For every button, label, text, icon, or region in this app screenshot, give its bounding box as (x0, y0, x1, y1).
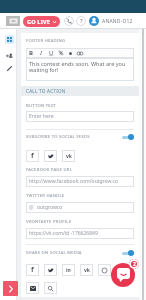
staticText: TWITTER HANDLE (26, 193, 65, 199)
button[interactable]: MAIL (26, 282, 39, 294)
button[interactable]: LINKEDIN (62, 264, 75, 276)
staticText: GO LIVE (27, 18, 51, 25)
button[interactable]: SUBSCRIBE TO SOCIAL FEEDS (26, 132, 134, 141)
button[interactable]: Audience (4, 50, 15, 61)
button[interactable]: VK (62, 150, 75, 162)
button[interactable]: This contest ends soon. What are you wai… (26, 58, 134, 81)
staticText: SHARE ON SOCIAL MEDIA (26, 250, 82, 256)
staticText: @ (29, 204, 34, 211)
button[interactable]: http://www.facebook.com/outgrow.co (26, 176, 134, 187)
staticText: FOOTER HEADING (26, 38, 66, 44)
staticText: B (29, 49, 33, 57)
button[interactable]: I (36, 48, 46, 58)
staticText: CALL TO ACTION (26, 88, 66, 94)
button[interactable]: Call support (64, 16, 74, 26)
staticText: ? (80, 17, 83, 25)
button[interactable]: LINK (44, 282, 57, 294)
staticText: outgrowco (37, 204, 63, 211)
button[interactable]: TWITTER (44, 150, 57, 162)
staticText: This contest ends soon. What are you wai… (29, 60, 131, 74)
button[interactable]: Help (76, 16, 86, 26)
button[interactable]: Logo (6, 16, 20, 26)
button[interactable]: VK (80, 264, 93, 276)
staticText: in (66, 267, 71, 274)
staticText: VKONTAKTE PROFILE (26, 219, 72, 225)
button[interactable]: Emoji (66, 48, 75, 58)
button[interactable]: PIN (98, 264, 111, 276)
staticText: http://www.facebook.com/outgrow.co (29, 178, 118, 185)
staticText: 2 (133, 261, 136, 268)
staticText: I (40, 49, 42, 57)
staticText: vk (84, 267, 90, 274)
button[interactable]: B (26, 48, 36, 58)
button[interactable]: GO LIVE (23, 16, 60, 27)
staticText: https://vk.com/id -176626849 (29, 230, 98, 237)
button[interactable]: @ (26, 202, 134, 213)
button[interactable]: Expand sidebar (3, 281, 18, 296)
button[interactable]: Account (89, 16, 99, 26)
staticText: ANAND-O12 (102, 18, 133, 25)
button[interactable]: SHARE ON SOCIAL MEDIA (26, 248, 134, 257)
staticText: U (49, 49, 54, 57)
button[interactable]: Edit (4, 63, 15, 74)
button[interactable]: U (46, 48, 56, 58)
staticText: f (31, 151, 34, 161)
button[interactable]: Insert link (75, 48, 85, 58)
staticText: BUTTON TEXT (26, 103, 57, 109)
button[interactable]: Dashboard (5, 35, 14, 44)
button[interactable]: TWITTER (44, 264, 57, 276)
button[interactable]: https://vk.com/id -176626849 (26, 228, 134, 239)
button[interactable]: Insert tag (56, 48, 66, 58)
button[interactable]: FACEBOOK (26, 150, 39, 162)
staticText: SUBSCRIBE TO SOCIAL FEEDS (26, 134, 90, 140)
button[interactable]: Enter here (26, 111, 134, 122)
staticText: FACEBOOK PAGE URL (26, 167, 73, 173)
staticText: Enter here (29, 113, 54, 120)
staticText: vk (66, 153, 72, 160)
staticText: f (31, 265, 34, 275)
button[interactable]: FACEBOOK (26, 264, 39, 276)
button[interactable]: Open chat (111, 263, 135, 287)
